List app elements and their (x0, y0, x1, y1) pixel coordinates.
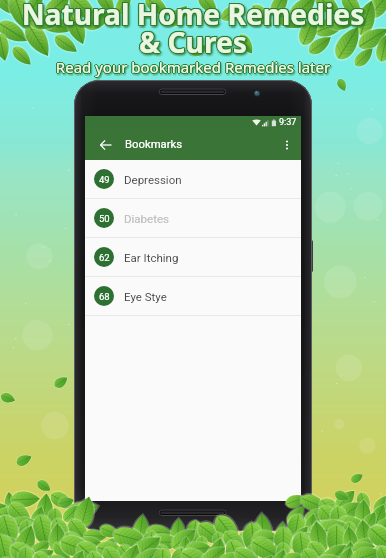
staticText: & Cures (0, 24, 386, 62)
staticText: Natural Home Remedies (0, 0, 386, 36)
staticText: Read your bookmarked Remedies later (1, 60, 386, 80)
staticText: Natural Home Remedies (2, 0, 386, 34)
staticText: Natural Home Remedies (1, 0, 386, 32)
staticText: 49 (99, 174, 110, 185)
staticText: Read your bookmarked Remedies later (0, 56, 386, 76)
staticText: & Cures (3, 24, 386, 62)
staticText: 62 (99, 252, 110, 263)
staticText: Read your bookmarked Remedies later (1, 57, 386, 77)
staticText: Read your bookmarked Remedies later (1, 57, 386, 77)
staticText: & Cures (1, 27, 386, 65)
staticText: Natural Home Remedies (0, 0, 386, 34)
staticText: Natural Home Remedies (1, 0, 386, 37)
button[interactable]: Back (93, 129, 119, 160)
staticText: Natural Home Remedies (0, 0, 385, 36)
staticText: Natural Home Remedies (0, 0, 386, 33)
staticText: Natural Home Remedies (1, 0, 386, 36)
staticText: Natural Home Remedies (1, 0, 386, 33)
staticText: & Cures (3, 26, 386, 64)
staticText: Read your bookmarked Remedies later (0, 57, 385, 77)
staticText: Eye Stye (124, 290, 167, 303)
staticText: & Cures (1, 23, 386, 61)
staticText: 68 (99, 291, 110, 302)
staticText: Natural Home Remedies (0, 0, 386, 34)
button[interactable]: 50 (85, 199, 301, 238)
staticText: & Cures (1, 22, 386, 60)
staticText: & Cures (2, 25, 386, 63)
staticText: Read your bookmarked Remedies later (1, 57, 386, 77)
staticText: Natural Home Remedies (0, 0, 385, 34)
staticText: & Cures (3, 22, 386, 60)
button[interactable]: More options (277, 129, 297, 160)
staticText: & Cures (1, 21, 386, 59)
staticText: & Cures (1, 23, 386, 61)
staticText: & Cures (1, 22, 386, 60)
staticText: & Cures (0, 23, 385, 61)
staticText: Natural Home Remedies (1, 0, 386, 32)
staticText: & Cures (2, 23, 386, 61)
staticText: Read your bookmarked Remedies later (0, 58, 386, 78)
staticText: 9:37 (279, 117, 297, 128)
staticText: Read your bookmarked Remedies later (0, 57, 386, 77)
staticText: Read your bookmarked Remedies later (0, 57, 385, 77)
staticText: Natural Home Remedies (3, 0, 386, 34)
staticText: & Cures (0, 22, 386, 60)
staticText: Read your bookmarked Remedies later (1, 57, 386, 77)
staticText: Read your bookmarked Remedies later (2, 60, 386, 80)
staticText: Read your bookmarked Remedies later (0, 58, 386, 78)
staticText: Read your bookmarked Remedies later (2, 58, 386, 78)
staticText: Read your bookmarked Remedies later (2, 59, 386, 79)
staticText: Natural Home Remedies (1, 0, 386, 33)
staticText: Natural Home Remedies (2, 0, 386, 35)
staticText: Natural Home Remedies (0, 0, 386, 34)
staticText: Diabetes (124, 212, 169, 225)
staticText: Natural Home Remedies (0, 0, 386, 34)
staticText: Natural Home Remedies (2, 0, 386, 33)
staticText: & Cures (2, 23, 386, 61)
staticText: Read your bookmarked Remedies later (2, 58, 386, 78)
staticText: Natural Home Remedies (0, 0, 385, 34)
staticText: Natural Home Remedies (0, 0, 384, 34)
staticText: & Cures (0, 24, 385, 62)
staticText: & Cures (0, 24, 384, 62)
staticText: & Cures (2, 25, 386, 63)
staticText: & Cures (0, 25, 386, 63)
staticText: Natural Home Remedies (1, 0, 386, 35)
staticText: Read your bookmarked Remedies later (0, 58, 386, 78)
staticText: Read your bookmarked Remedies later (0, 57, 385, 77)
button[interactable]: 49 (85, 160, 301, 199)
staticText: & Cures (1, 26, 386, 64)
staticText: Read your bookmarked Remedies later (0, 56, 386, 76)
button[interactable]: 62 (85, 238, 301, 277)
staticText: & Cures (1, 25, 386, 63)
staticText: Natural Home Remedies (1, 0, 386, 33)
staticText: Read your bookmarked Remedies later (0, 57, 386, 77)
staticText: & Cures (0, 23, 385, 61)
staticText: Bookmarks (125, 138, 183, 151)
staticText: & Cures (0, 22, 385, 60)
staticText: 50 (99, 213, 110, 224)
staticText: Natural Home Remedies (0, 0, 385, 33)
staticText: & Cures (0, 23, 386, 61)
staticText: Read your bookmarked Remedies later (0, 58, 385, 78)
staticText: Ear Itching (124, 251, 179, 264)
button[interactable]: 68 (85, 277, 301, 316)
staticText: Read your bookmarked Remedies later (1, 59, 386, 79)
staticText: Natural Home Remedies (0, 0, 385, 32)
staticText: & Cures (0, 24, 386, 62)
staticText: Natural Home Remedies (0, 0, 385, 32)
staticText: & Cures (0, 24, 386, 62)
staticText: Natural Home Remedies (0, 0, 386, 35)
staticText: Natural Home Remedies (0, 0, 386, 32)
staticText: Natural Home Remedies (0, 0, 386, 33)
staticText: Natural Home Remedies (0, 0, 386, 32)
staticText: Read your bookmarked Remedies later (1, 57, 386, 77)
staticText: & Cures (2, 24, 386, 62)
staticText: Read your bookmarked Remedies later (2, 57, 386, 77)
staticText: Natural Home Remedies (2, 0, 386, 36)
staticText: Natural Home Remedies (3, 0, 386, 32)
staticText: & Cures (0, 22, 385, 60)
staticText: Read your bookmarked Remedies later (0, 60, 386, 80)
staticText: & Cures (0, 23, 386, 61)
staticText: Read your bookmarked Remedies later (0, 58, 386, 78)
